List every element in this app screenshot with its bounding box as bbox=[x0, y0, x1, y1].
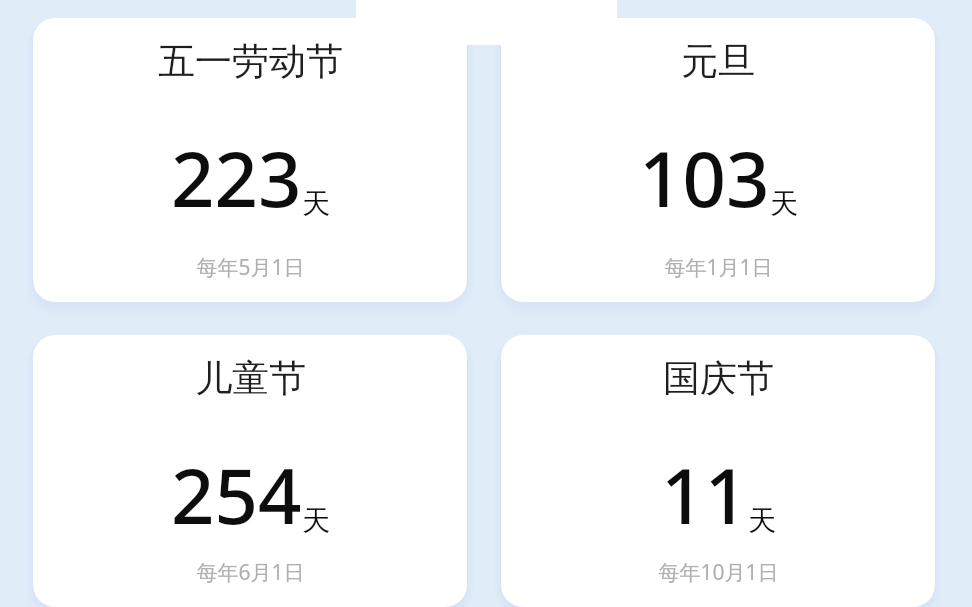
button[interactable]: 国庆节 bbox=[501, 335, 935, 607]
staticText: 254 bbox=[171, 443, 302, 547]
staticText: 每年5月1日 bbox=[196, 253, 305, 282]
staticText: 天 bbox=[302, 503, 330, 538]
staticText: 每年1月1日 bbox=[664, 253, 773, 282]
staticText: 103 bbox=[639, 126, 770, 230]
staticText: 五一劳动节 bbox=[158, 38, 343, 85]
button[interactable]: 五一劳动节 bbox=[33, 18, 467, 302]
staticText: 11 bbox=[661, 443, 748, 547]
staticText: 儿童节 bbox=[195, 355, 306, 402]
staticText: 国庆节 bbox=[663, 355, 774, 402]
button[interactable]: 儿童节 bbox=[33, 335, 467, 607]
staticText: 天 bbox=[748, 503, 776, 538]
staticText: 223 bbox=[171, 126, 302, 230]
staticText: 天 bbox=[770, 186, 798, 221]
staticText: 每年6月1日 bbox=[196, 558, 305, 587]
staticText: 每年10月1日 bbox=[658, 558, 779, 587]
staticText: 天 bbox=[302, 186, 330, 221]
staticText: 元旦 bbox=[681, 38, 755, 85]
button[interactable]: 元旦 bbox=[501, 18, 935, 302]
